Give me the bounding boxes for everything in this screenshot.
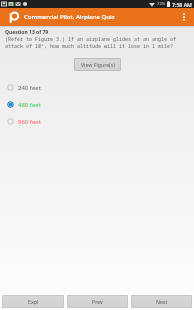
staticText: Question 13 of 79 — [5, 29, 49, 36]
staticText: View Figure(s) — [81, 61, 115, 68]
staticText: Commercial Pilot, Airplane Quiz — [24, 13, 115, 21]
staticText: Prev — [92, 298, 103, 305]
button[interactable]: Expl — [2, 295, 64, 308]
staticText: Next — [156, 298, 168, 305]
button[interactable]: Next — [131, 295, 192, 308]
button[interactable]: Prev — [67, 295, 128, 308]
button[interactable]: 240 feet — [0, 79, 194, 96]
staticText: 7:58 AM — [172, 1, 192, 8]
button[interactable]: 480 feet — [0, 96, 194, 113]
staticText: 240 feet — [18, 84, 41, 92]
staticText: Expl — [28, 298, 39, 305]
staticText: 960 feet — [18, 118, 41, 126]
staticText: (Refer to Figure 3.) If an airplane glid… — [5, 36, 177, 50]
button[interactable]: View Figure(s) — [74, 58, 121, 71]
staticText: 480 feet — [18, 101, 41, 109]
button[interactable]: More options — [175, 8, 193, 26]
staticText: 72% — [157, 1, 166, 7]
button[interactable]: 960 feet — [0, 113, 194, 130]
